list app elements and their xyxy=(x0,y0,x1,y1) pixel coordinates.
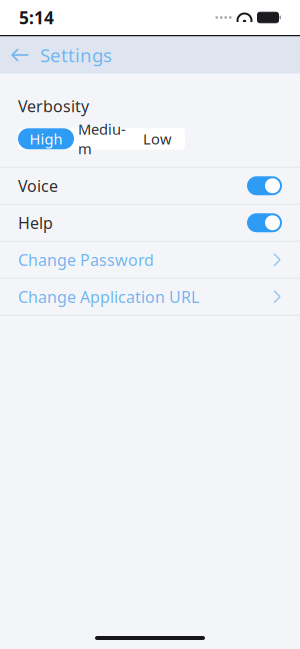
staticText: Help xyxy=(18,212,53,233)
staticText: Medium xyxy=(78,119,126,158)
button[interactable]: Back xyxy=(0,36,40,73)
staticText: 5:14 xyxy=(19,6,54,29)
button[interactable]: Change Password xyxy=(0,242,300,278)
staticText: Change Password xyxy=(18,249,154,270)
button[interactable]: High xyxy=(18,128,74,149)
button[interactable]: Medium xyxy=(74,128,130,149)
button[interactable]: Change Application URL xyxy=(0,279,300,315)
staticText: Change Application URL xyxy=(18,286,199,307)
staticText: Verbosity xyxy=(18,95,89,117)
staticText: High xyxy=(29,129,62,148)
staticText: Low xyxy=(143,129,172,148)
staticText: Settings xyxy=(40,43,112,67)
button[interactable]: Help xyxy=(0,205,300,241)
button[interactable]: Settings xyxy=(40,33,126,77)
staticText: Voice xyxy=(18,175,58,196)
button[interactable]: Low xyxy=(130,128,185,149)
button[interactable]: Voice xyxy=(0,168,300,204)
